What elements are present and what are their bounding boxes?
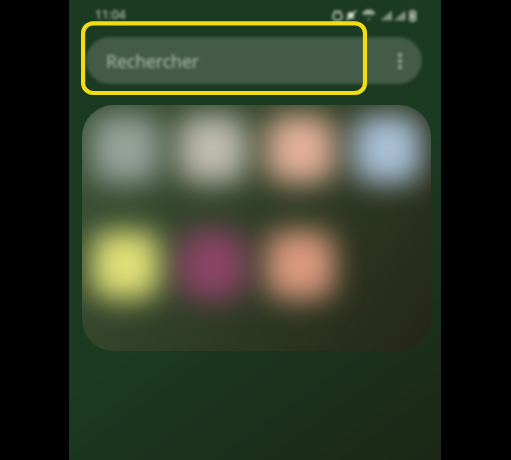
button[interactable]: [82, 105, 431, 351]
staticText: Rechercher: [106, 49, 200, 73]
button[interactable]: Rechercher: [86, 37, 422, 84]
button[interactable]: More options: [387, 48, 413, 74]
staticText: 11:04: [95, 6, 126, 22]
